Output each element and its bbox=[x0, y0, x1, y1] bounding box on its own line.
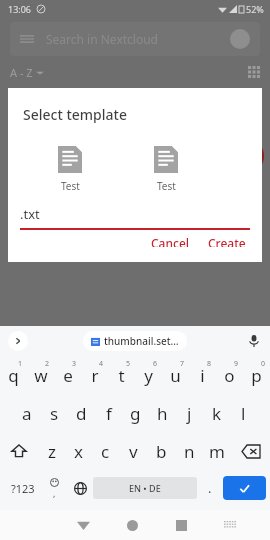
staticText: . bbox=[208, 479, 212, 497]
button[interactable]: Backspace bbox=[231, 432, 270, 470]
button[interactable]: f bbox=[95, 394, 122, 432]
staticText: z bbox=[48, 440, 56, 463]
staticText: x bbox=[74, 440, 83, 463]
staticText: Test bbox=[61, 179, 80, 193]
button[interactable]: Test bbox=[54, 142, 86, 197]
staticText: b bbox=[156, 440, 167, 463]
staticText: 2 bbox=[45, 359, 50, 369]
staticText: 8 bbox=[207, 359, 212, 369]
button[interactable]: all share types.md bbox=[0, 128, 270, 184]
staticText: v bbox=[129, 440, 138, 463]
button[interactable]: p bbox=[243, 356, 270, 394]
button[interactable]: e bbox=[54, 356, 81, 394]
button[interactable]: a bbox=[13, 394, 41, 432]
staticText: .txt bbox=[20, 205, 40, 223]
staticText: EN • DE bbox=[129, 482, 161, 494]
button[interactable]: ?123 bbox=[4, 470, 42, 506]
button[interactable]: w bbox=[27, 356, 54, 394]
button[interactable]: c bbox=[92, 432, 119, 470]
button[interactable]: t bbox=[108, 356, 135, 394]
staticText: thumbnail.set… bbox=[104, 334, 179, 348]
button[interactable]: v bbox=[119, 432, 147, 470]
staticText: l bbox=[241, 402, 246, 425]
staticText: c bbox=[101, 440, 110, 463]
button[interactable]: j bbox=[176, 394, 203, 432]
button[interactable]: 107.3 MB • Feb 10 bbox=[0, 88, 270, 128]
staticText: Create bbox=[208, 235, 246, 247]
staticText: h bbox=[157, 402, 168, 425]
button[interactable]: h bbox=[149, 394, 176, 432]
staticText: q bbox=[8, 364, 19, 387]
staticText: m bbox=[209, 440, 225, 463]
button[interactable]: thumbnail.set… bbox=[83, 331, 187, 351]
button[interactable]: EN • DE bbox=[93, 477, 197, 499]
staticText: all share types.md bbox=[50, 141, 153, 157]
staticText: 6 bbox=[153, 359, 158, 369]
button[interactable]: u bbox=[162, 356, 189, 394]
staticText: 0 bbox=[261, 359, 266, 369]
button[interactable]: g bbox=[122, 394, 149, 432]
staticText: ?123 bbox=[11, 481, 35, 496]
staticText: d bbox=[76, 402, 87, 425]
button[interactable]: Emoji bbox=[42, 470, 67, 506]
staticText: k bbox=[212, 402, 222, 425]
staticText: j bbox=[187, 402, 192, 425]
staticText: 52% bbox=[246, 3, 264, 15]
button[interactable]: m bbox=[203, 432, 231, 470]
staticText: s bbox=[50, 402, 59, 425]
button[interactable]: Back bbox=[59, 510, 108, 540]
button[interactable]: l bbox=[230, 394, 257, 432]
staticText: Cancel bbox=[151, 235, 190, 247]
button[interactable]: Home bbox=[108, 510, 157, 540]
button[interactable]: z bbox=[38, 432, 65, 470]
button[interactable]: q bbox=[0, 356, 27, 394]
staticText: 7 bbox=[180, 359, 185, 369]
staticText: 4 bbox=[99, 359, 104, 369]
button[interactable]: r bbox=[81, 356, 108, 394]
staticText: Test bbox=[157, 179, 176, 193]
button[interactable]: Test bbox=[150, 142, 182, 197]
staticText: o bbox=[224, 364, 235, 387]
other: Menu bbox=[20, 32, 34, 46]
staticText: e bbox=[63, 364, 73, 387]
button[interactable]: Cancel bbox=[145, 230, 196, 252]
button[interactable]: A - Z bbox=[10, 65, 44, 80]
button[interactable]: Create bbox=[202, 230, 252, 252]
button[interactable]: k bbox=[203, 394, 230, 432]
staticText: t bbox=[118, 364, 125, 387]
staticText: 1 bbox=[18, 359, 23, 369]
button[interactable]: Change language bbox=[67, 470, 93, 506]
button[interactable]: Done bbox=[223, 476, 266, 500]
button[interactable]: Account bbox=[230, 29, 250, 49]
staticText: , bbox=[53, 487, 56, 499]
button[interactable]: Add bbox=[228, 138, 264, 174]
staticText: u bbox=[170, 364, 181, 387]
staticText: f bbox=[106, 402, 112, 425]
button[interactable]: n bbox=[175, 432, 203, 470]
button[interactable]: o bbox=[216, 356, 243, 394]
button[interactable]: b bbox=[147, 432, 175, 470]
staticText: 5 bbox=[126, 359, 131, 369]
button[interactable]: x bbox=[65, 432, 92, 470]
button[interactable]: Voice input bbox=[248, 335, 260, 347]
button[interactable]: i bbox=[189, 356, 216, 394]
button[interactable]: . bbox=[197, 470, 223, 506]
button[interactable]: Recents bbox=[157, 510, 206, 540]
staticText: 107.3 MB • Feb 10 bbox=[50, 105, 134, 119]
staticText: p bbox=[251, 364, 262, 387]
button[interactable]: Hide keyboard bbox=[206, 510, 255, 540]
staticText: n bbox=[184, 440, 195, 463]
button[interactable]: Grid view bbox=[248, 66, 260, 78]
button[interactable]: Shift bbox=[0, 432, 38, 470]
staticText: a bbox=[22, 402, 32, 425]
button[interactable]: y bbox=[135, 356, 162, 394]
staticText: 9 bbox=[234, 359, 239, 369]
button[interactable]: d bbox=[68, 394, 95, 432]
staticText: 128 B • 12/17/2020 bbox=[50, 159, 130, 171]
staticText: w bbox=[34, 364, 48, 387]
staticText: y bbox=[144, 364, 153, 387]
button[interactable]: More suggestions bbox=[8, 331, 28, 351]
button[interactable]: Menu bbox=[10, 22, 260, 56]
button[interactable]: s bbox=[41, 394, 68, 432]
